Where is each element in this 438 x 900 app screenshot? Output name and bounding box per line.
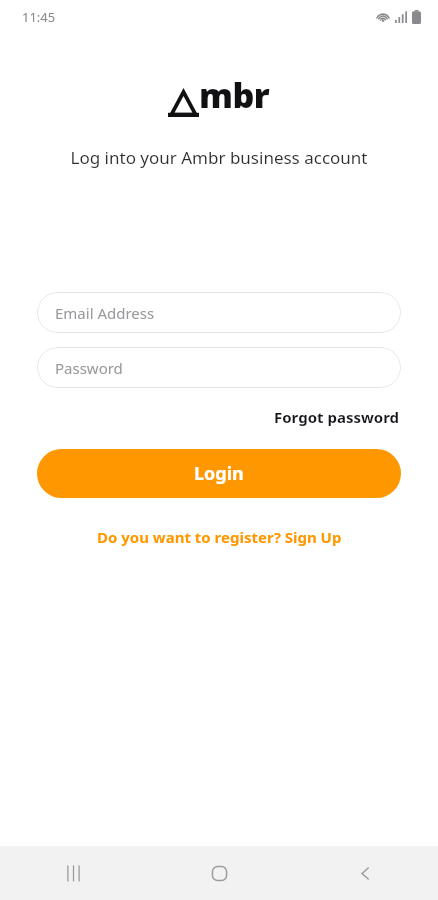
staticText: Email Address bbox=[55, 303, 155, 323]
staticText: Log into your Ambr business account bbox=[16, 146, 422, 169]
staticText: 11:45 bbox=[22, 8, 56, 26]
button[interactable]: Login bbox=[37, 449, 401, 498]
button[interactable]: Email Address bbox=[37, 292, 401, 333]
staticText: Login bbox=[194, 461, 244, 486]
button[interactable]: Back bbox=[292, 846, 438, 900]
staticText: mbr bbox=[199, 72, 270, 118]
button[interactable]: Do you want to register? Sign Up bbox=[91, 524, 348, 550]
button[interactable]: Password bbox=[37, 347, 401, 388]
button[interactable]: Home bbox=[146, 846, 292, 900]
staticText: Do you want to register? Sign Up bbox=[97, 527, 342, 547]
staticText: Password bbox=[55, 358, 123, 378]
staticText: Forgot password bbox=[274, 407, 400, 427]
button[interactable]: Forgot password bbox=[272, 405, 402, 429]
button[interactable]: Recent apps bbox=[0, 846, 146, 900]
